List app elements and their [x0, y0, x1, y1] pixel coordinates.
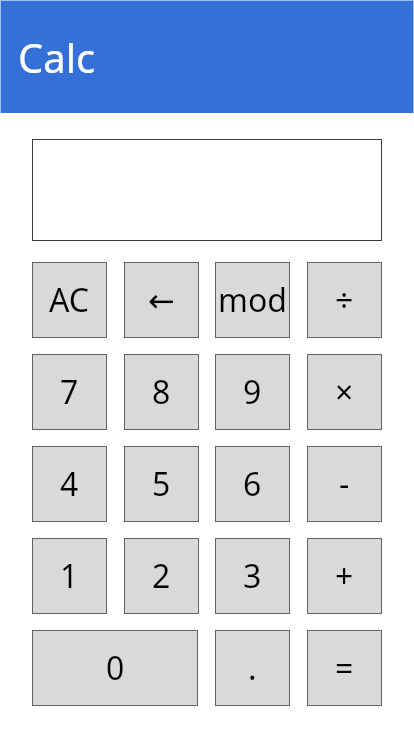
staticText: -	[339, 462, 350, 506]
staticText: 9	[243, 370, 262, 414]
button[interactable]: ←	[124, 262, 199, 338]
staticText: 8	[152, 370, 171, 414]
staticText: .	[248, 646, 257, 690]
button[interactable]: .	[215, 630, 290, 706]
button[interactable]: 7	[32, 354, 107, 430]
staticText: ÷	[335, 278, 354, 322]
button[interactable]: 9	[215, 354, 290, 430]
button[interactable]: 5	[124, 446, 199, 522]
button[interactable]: 6	[215, 446, 290, 522]
button[interactable]: =	[307, 630, 382, 706]
button[interactable]: 1	[32, 538, 107, 614]
staticText: 1	[60, 554, 79, 598]
button[interactable]: mod	[215, 262, 290, 338]
staticText: 2	[152, 554, 171, 598]
button[interactable]: +	[307, 538, 382, 614]
button[interactable]: 4	[32, 446, 107, 522]
staticText: ×	[335, 370, 354, 414]
staticText: 3	[243, 554, 262, 598]
staticText: 0	[106, 646, 125, 690]
button[interactable]: 3	[215, 538, 290, 614]
staticText: 7	[60, 370, 79, 414]
staticText: +	[335, 554, 354, 598]
staticText: AC	[49, 278, 90, 322]
button[interactable]: AC	[32, 262, 107, 338]
staticText: mod	[218, 278, 287, 322]
staticText: 4	[60, 462, 79, 506]
button[interactable]: ×	[307, 354, 382, 430]
staticText: Calc	[18, 30, 96, 84]
button[interactable]: -	[307, 446, 382, 522]
button[interactable]: ÷	[307, 262, 382, 338]
staticText: 6	[243, 462, 262, 506]
button[interactable]: 0	[32, 630, 198, 706]
staticText: =	[335, 646, 354, 690]
button[interactable]: 8	[124, 354, 199, 430]
staticText: 5	[152, 462, 171, 506]
staticText: ←	[148, 282, 175, 319]
button[interactable]: 2	[124, 538, 199, 614]
